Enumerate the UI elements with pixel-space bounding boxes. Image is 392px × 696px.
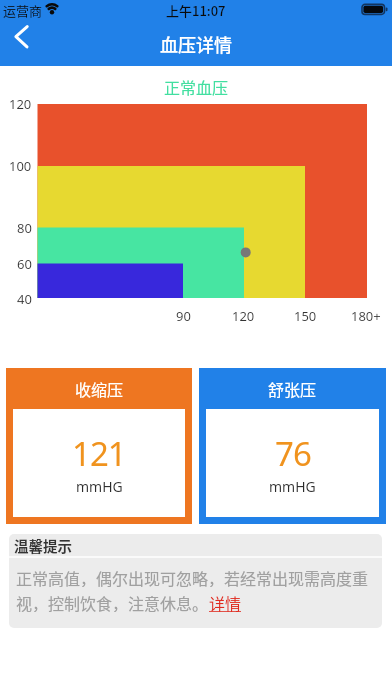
staticText: 150: [294, 307, 317, 325]
staticText: 120: [232, 307, 255, 325]
staticText: 76: [275, 431, 311, 467]
staticText: 视，控制饮食，注意休息。: [16, 591, 209, 612]
staticText: 80: [17, 219, 32, 237]
staticText: 40: [17, 290, 32, 308]
staticText: 血压详情: [160, 31, 232, 57]
button[interactable]: 详情: [209, 591, 242, 612]
staticText: 60: [17, 255, 32, 273]
button[interactable]: [0, 22, 44, 54]
staticText: mmHG: [76, 477, 123, 495]
staticText: 180+: [351, 307, 381, 325]
staticText: 运营商: [3, 1, 43, 20]
staticText: 90: [176, 307, 191, 325]
staticText: 温馨提示: [14, 535, 72, 556]
staticText: 正常高值，偶尔出现可忽略，若经常出现需高度重: [16, 566, 369, 587]
staticText: 上午11:07: [166, 1, 226, 20]
staticText: 收缩压: [75, 377, 124, 400]
staticText: 正常血压: [164, 75, 229, 97]
staticText: 100: [9, 157, 32, 175]
staticText: 120: [9, 95, 32, 113]
staticText: 详情: [209, 591, 242, 612]
staticText: 舒张压: [268, 377, 317, 400]
staticText: 121: [72, 431, 126, 467]
button[interactable]: 收缩压: [6, 368, 192, 524]
button[interactable]: 舒张压: [199, 368, 386, 524]
staticText: mmHG: [269, 477, 316, 495]
